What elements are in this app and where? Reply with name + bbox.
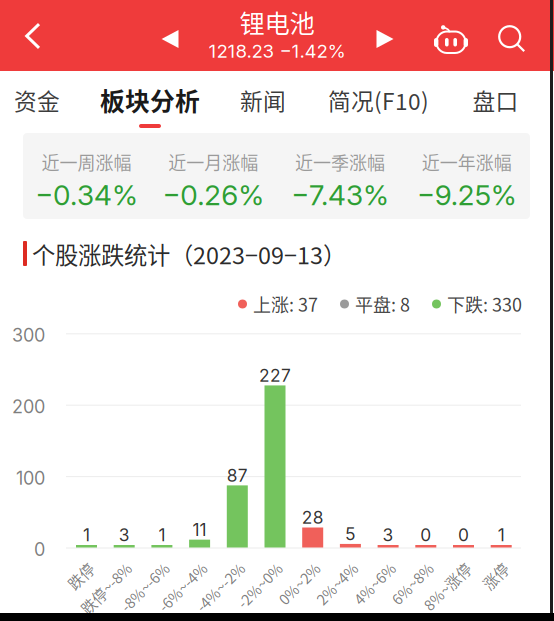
staticText: 227	[259, 365, 291, 386]
button[interactable]: 资金	[0, 71, 92, 130]
staticText: 下跌: 330	[447, 291, 522, 317]
staticText: 3	[383, 524, 394, 545]
staticText: 1	[158, 524, 165, 545]
button[interactable]: AI assistant	[427, 11, 475, 67]
button[interactable]: 新闻	[208, 71, 318, 130]
staticText: 5	[345, 523, 356, 544]
staticText: 近一年涨幅	[422, 149, 512, 175]
staticText: 涨停	[476, 554, 506, 576]
staticText: 近一周涨幅	[41, 149, 131, 175]
staticText: 0%~2%	[266, 554, 318, 576]
button[interactable]: 简况(F10)	[323, 71, 433, 130]
staticText: 28	[302, 507, 324, 528]
staticText: 2%~4%	[303, 554, 355, 576]
staticText: -2%~0%	[223, 554, 280, 576]
staticText: −0.26%	[162, 178, 264, 212]
staticText: -4%~-2%	[180, 554, 242, 576]
staticText: 平盘: 8	[355, 291, 410, 317]
staticText: 简况(F10)	[328, 84, 429, 116]
staticText: 锂电池	[239, 4, 314, 40]
staticText: −9.25%	[417, 178, 517, 212]
staticText: 0	[458, 524, 469, 545]
staticText: 上涨: 37	[253, 291, 318, 317]
button[interactable]: Next sector	[363, 11, 407, 67]
staticText: 新闻	[240, 84, 286, 116]
staticText: −7.43%	[291, 178, 389, 212]
staticText: 跌停	[61, 554, 91, 576]
staticText: 资金	[14, 84, 60, 116]
button[interactable]: 板块分析	[95, 71, 205, 130]
staticText: −0.34%	[35, 178, 138, 212]
button[interactable]: 盘口	[440, 71, 550, 130]
staticText: 1218.23 −1.42%	[208, 40, 345, 62]
staticText: -6%~-4%	[143, 554, 205, 576]
staticText: 盘口	[472, 84, 518, 116]
staticText: 100	[16, 467, 45, 489]
staticText: 近一月涨幅	[168, 149, 258, 175]
staticText: 近一季涨幅	[295, 149, 385, 175]
button[interactable]: Previous sector	[148, 11, 192, 67]
staticText: 个股涨跌统计（2023−09−13）	[32, 237, 346, 271]
staticText: 3	[119, 524, 130, 545]
staticText: 300	[12, 324, 45, 346]
staticText: 1	[83, 524, 90, 545]
staticText: 0	[420, 524, 431, 545]
staticText: 87	[227, 465, 248, 486]
button[interactable]: Search	[488, 11, 536, 67]
staticText: 板块分析	[100, 82, 200, 118]
staticText: 0	[34, 539, 45, 560]
staticText: 200	[12, 396, 45, 418]
staticText: -8%~-6%	[105, 554, 167, 576]
staticText: 1	[498, 524, 505, 545]
staticText: 6%~8%	[379, 554, 431, 576]
staticText: 跌停~-8%	[64, 554, 129, 576]
staticText: 8%~涨停	[408, 554, 468, 576]
button[interactable]: Back	[6, 6, 60, 66]
staticText: 4%~6%	[341, 554, 393, 576]
staticText: 11	[193, 519, 207, 540]
